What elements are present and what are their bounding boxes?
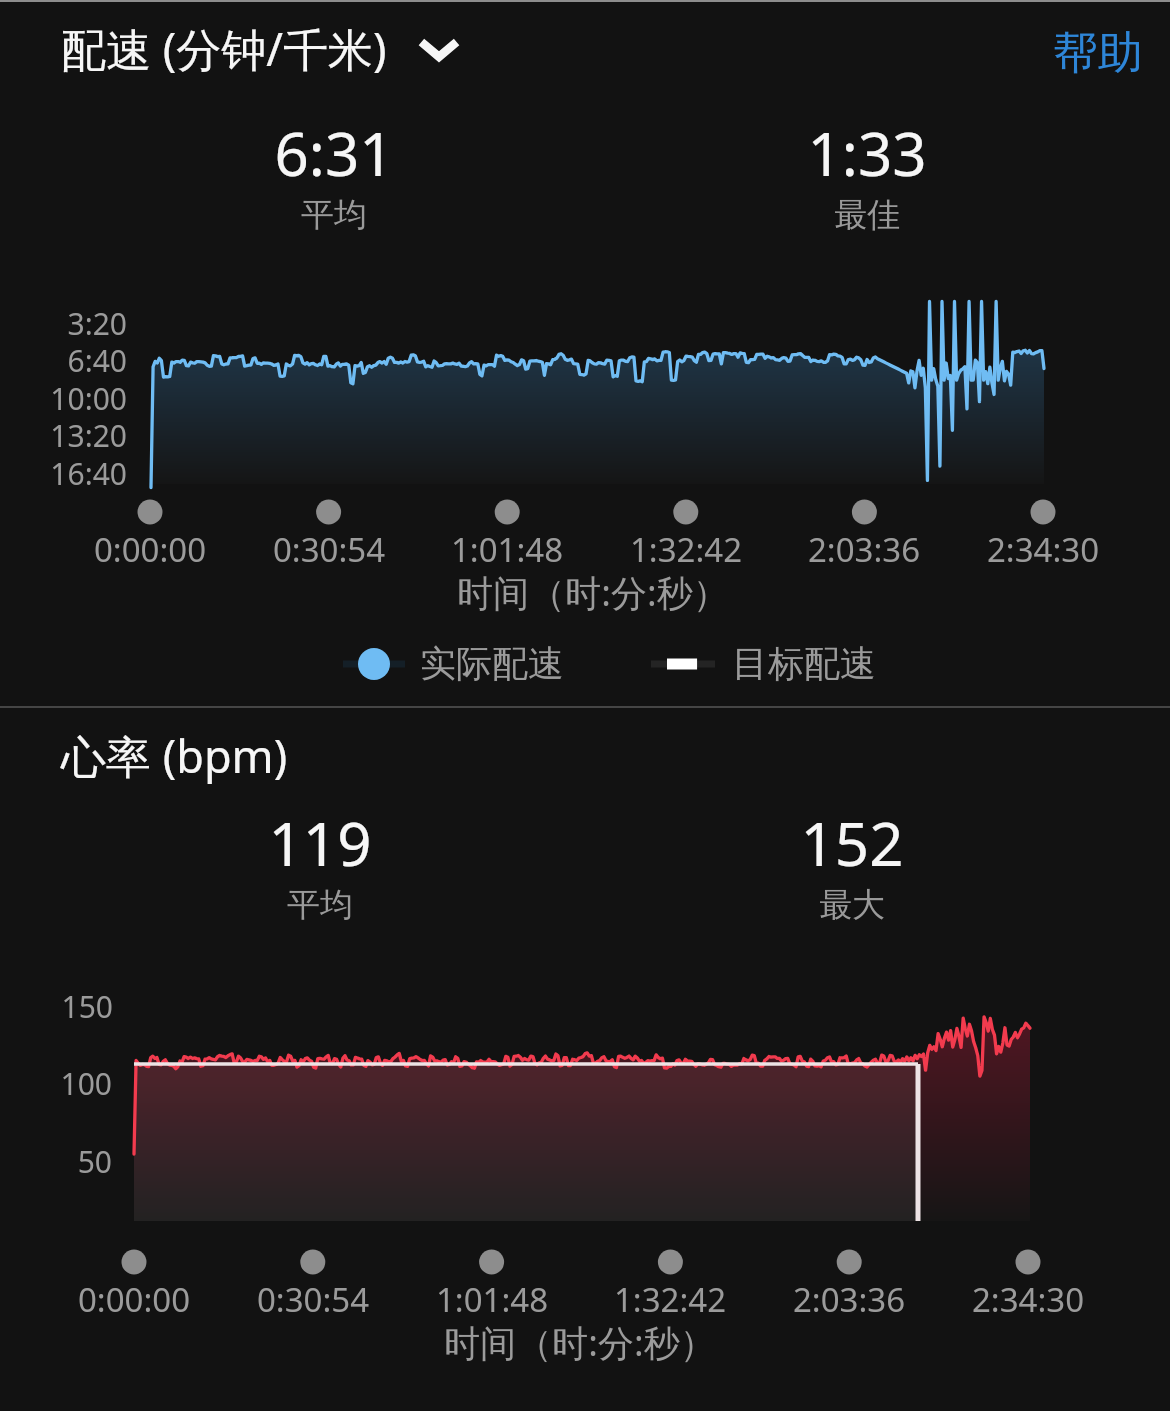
staticText: 2:34:30	[923, 527, 1163, 572]
staticText: 2:03:36	[744, 527, 984, 572]
staticText: 0:00:00	[30, 527, 270, 572]
staticText: 150	[0, 986, 113, 1027]
staticText: 0:00:00	[14, 1277, 254, 1322]
staticText: 平均	[170, 884, 470, 926]
staticText: 0:30:54	[193, 1277, 433, 1322]
staticText: 0:30:54	[209, 527, 449, 572]
staticText: 152	[702, 802, 1002, 884]
staticText: 3:20	[0, 303, 127, 344]
staticText: 1:32:42	[550, 1277, 790, 1322]
staticText: 119	[170, 802, 470, 884]
staticText: 50	[0, 1141, 112, 1182]
staticText: 平均	[184, 194, 484, 236]
staticText: 时间（时:分:秒）	[293, 568, 893, 617]
staticText: 6:31	[184, 112, 484, 194]
button[interactable]: 目标配速	[651, 641, 876, 686]
staticText: 16:40	[0, 453, 127, 494]
staticText: 10:00	[0, 378, 127, 419]
staticText: 13:20	[0, 415, 127, 456]
button[interactable]: 配速 (分钟/千米)	[48, 12, 465, 85]
button[interactable]: 实际配速	[343, 641, 564, 686]
staticText: 帮助	[1053, 25, 1143, 82]
button[interactable]: 帮助	[1031, 13, 1165, 94]
staticText: 时间（时:分:秒）	[280, 1318, 880, 1367]
staticText: 配速 (分钟/千米)	[61, 18, 387, 79]
staticText: 最佳	[717, 194, 1017, 236]
staticText: 2:03:36	[729, 1277, 969, 1322]
staticText: 100	[0, 1063, 112, 1104]
staticText: 1:33	[717, 112, 1017, 194]
staticText: 最大	[702, 884, 1002, 926]
staticText: 6:40	[0, 340, 127, 381]
staticText: 心率 (bpm)	[61, 725, 288, 786]
staticText: 1:01:48	[387, 527, 627, 572]
staticText: 1:01:48	[372, 1277, 612, 1322]
staticText: 2:34:30	[908, 1277, 1148, 1322]
button[interactable]: 心率 (bpm)	[48, 717, 301, 794]
staticText: 目标配速	[732, 641, 876, 686]
staticText: 实际配速	[420, 641, 564, 686]
other: Change metric	[419, 35, 459, 63]
staticText: 1:32:42	[566, 527, 806, 572]
